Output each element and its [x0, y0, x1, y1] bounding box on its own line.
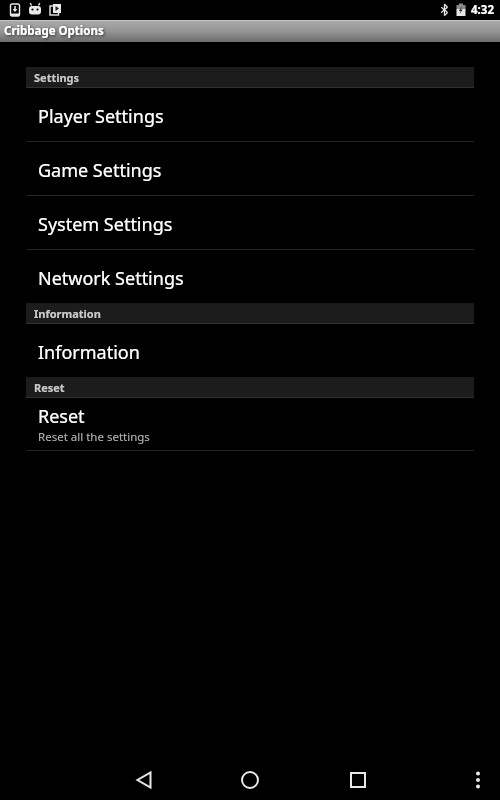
staticText: Player Settings: [38, 104, 164, 129]
button[interactable]: Game Settings: [0, 142, 500, 195]
button[interactable]: Network Settings: [0, 250, 500, 303]
button[interactable]: [342, 764, 374, 796]
staticText: Reset all the settings: [38, 429, 150, 445]
staticText: Network Settings: [38, 266, 184, 291]
button[interactable]: Player Settings: [0, 88, 500, 141]
button[interactable]: Reset: [0, 398, 500, 450]
staticText: Information: [38, 340, 140, 365]
staticText: Cribbage Options: [4, 23, 104, 39]
staticText: Information: [34, 306, 101, 321]
staticText: Settings: [34, 70, 80, 85]
button[interactable]: [466, 768, 490, 792]
staticText: Reset: [38, 404, 85, 429]
staticText: Reset: [34, 380, 65, 395]
staticText: Game Settings: [38, 158, 162, 183]
button[interactable]: [128, 764, 160, 796]
staticText: 4:32: [471, 2, 494, 18]
button[interactable]: Information: [0, 324, 500, 377]
button[interactable]: System Settings: [0, 196, 500, 249]
staticText: System Settings: [38, 212, 173, 237]
button[interactable]: [234, 764, 266, 796]
